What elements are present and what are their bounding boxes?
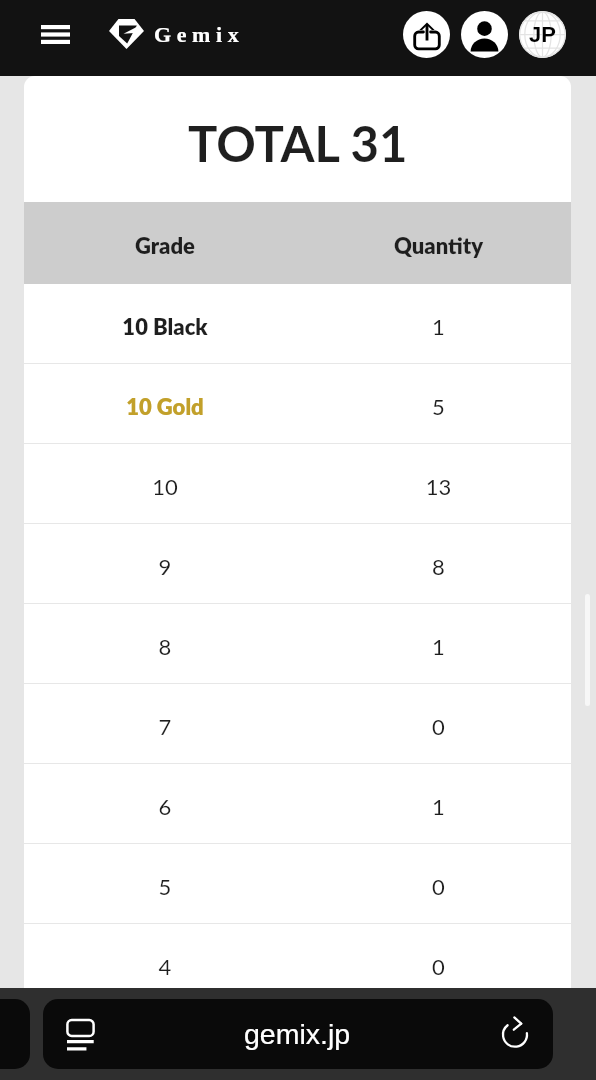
staticText: gemix.jp bbox=[117, 1018, 477, 1050]
staticText: Quantity bbox=[306, 232, 571, 258]
staticText: 10 bbox=[24, 473, 306, 499]
staticText: 5 bbox=[24, 873, 306, 899]
staticText: 0 bbox=[306, 713, 571, 739]
staticText: 1 bbox=[306, 793, 571, 819]
staticText: Grade bbox=[24, 232, 306, 258]
staticText: 4 bbox=[24, 953, 306, 979]
staticText: JP bbox=[529, 22, 556, 47]
staticText: 0 bbox=[306, 953, 571, 979]
button[interactable]: Language JP bbox=[519, 11, 566, 58]
staticText: 1 bbox=[306, 633, 571, 659]
button[interactable]: Share bbox=[403, 11, 450, 58]
staticText: 0 bbox=[306, 873, 571, 899]
button[interactable]: 5 bbox=[24, 844, 571, 923]
button[interactable]: Previous tab bbox=[0, 999, 30, 1069]
button[interactable]: Reader view bbox=[43, 999, 117, 1069]
button[interactable]: 7 bbox=[24, 684, 571, 763]
staticText: 8 bbox=[24, 633, 306, 659]
button[interactable]: Reload bbox=[477, 999, 553, 1069]
button[interactable]: Reader view bbox=[43, 999, 553, 1069]
staticText: 10 Gold bbox=[24, 393, 306, 419]
staticText: 1 bbox=[306, 313, 571, 339]
staticText: 8 bbox=[306, 553, 571, 579]
staticText: 13 bbox=[306, 473, 571, 499]
staticText: 9 bbox=[24, 553, 306, 579]
button[interactable]: Menu bbox=[27, 10, 83, 58]
staticText: 10 Black bbox=[24, 313, 306, 339]
staticText: Gemix bbox=[154, 22, 245, 46]
staticText: 5 bbox=[306, 393, 571, 419]
staticText: 6 bbox=[24, 793, 306, 819]
button[interactable]: 4 bbox=[24, 924, 571, 1003]
button[interactable]: 8 bbox=[24, 604, 571, 683]
button[interactable]: 10 Black bbox=[24, 284, 571, 363]
button[interactable]: 10 Gold bbox=[24, 364, 571, 443]
staticText: 7 bbox=[24, 713, 306, 739]
button[interactable]: Account bbox=[461, 11, 508, 58]
button[interactable]: 10 bbox=[24, 444, 571, 523]
staticText: TOTAL 31 bbox=[188, 114, 408, 173]
button[interactable]: 9 bbox=[24, 524, 571, 603]
button[interactable]: 6 bbox=[24, 764, 571, 843]
